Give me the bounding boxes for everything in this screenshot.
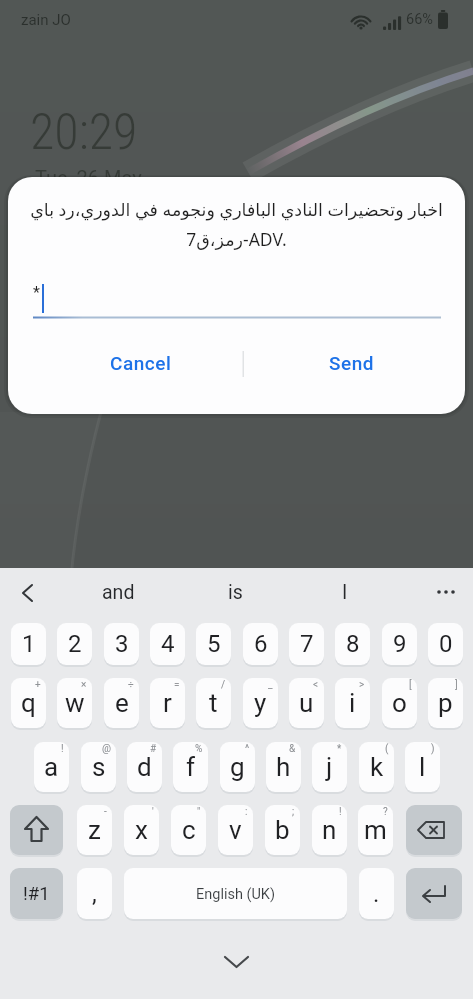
button[interactable] (124, 868, 347, 919)
staticText: ] (455, 679, 458, 691)
staticText: x (135, 815, 148, 845)
button[interactable]: u (289, 678, 324, 728)
staticText: English (UK) (196, 886, 276, 903)
staticText: " (197, 806, 201, 818)
button[interactable]: g (220, 742, 255, 792)
button[interactable]: e (104, 678, 139, 728)
button[interactable]: !#1 (10, 868, 63, 919)
staticText: . (373, 880, 380, 908)
button[interactable] (414, 568, 473, 616)
staticText: !#1 (23, 883, 50, 905)
staticText: and (102, 581, 135, 604)
staticText: d (137, 752, 152, 782)
button[interactable]: 8 (335, 623, 370, 665)
button[interactable]: c (171, 805, 206, 855)
staticText: 20:29 (30, 103, 138, 162)
staticText: - (104, 806, 107, 818)
staticText: ! (339, 806, 342, 818)
button[interactable]: n (312, 805, 347, 855)
staticText: + (35, 679, 41, 691)
staticText: zain JO (21, 11, 71, 29)
staticText: z (88, 815, 101, 845)
button[interactable]: 4 (150, 623, 185, 665)
button[interactable]: a (34, 742, 69, 792)
staticText: j (326, 752, 333, 782)
button[interactable]: Cancel (71, 338, 211, 388)
button[interactable]: d (127, 742, 162, 792)
staticText: ! (61, 743, 64, 755)
staticText: m (364, 815, 387, 845)
button[interactable] (60, 568, 178, 616)
staticText: 66% (406, 11, 433, 28)
button[interactable]: 7 (289, 623, 324, 665)
staticText: / (221, 679, 226, 691)
staticText: s (92, 752, 106, 782)
button[interactable]: 6 (243, 623, 278, 665)
staticText: Cancel (110, 352, 172, 374)
staticText: k (370, 752, 384, 782)
staticText: 6 (254, 630, 268, 658)
staticText: > (359, 679, 365, 691)
button[interactable] (296, 568, 414, 616)
button[interactable]: l (405, 742, 440, 792)
staticText: = (174, 679, 180, 691)
staticText: @ (102, 743, 111, 755)
staticText: f (186, 752, 196, 782)
button[interactable]: w (57, 678, 92, 728)
button[interactable] (178, 568, 296, 616)
staticText: × (81, 679, 87, 691)
button[interactable] (200, 943, 273, 983)
staticText: 3 (115, 630, 129, 658)
button[interactable] (406, 868, 462, 919)
button[interactable]: b (265, 805, 300, 855)
staticText: t (209, 688, 218, 718)
staticText: r (163, 688, 172, 718)
button[interactable]: r (150, 678, 185, 728)
button[interactable]: i (335, 678, 370, 728)
button[interactable]: 5 (196, 623, 231, 665)
button[interactable]: q (11, 678, 46, 728)
button[interactable] (406, 805, 462, 855)
button[interactable]: v (218, 805, 253, 855)
button[interactable]: k (359, 742, 394, 792)
button[interactable]: f (173, 742, 208, 792)
button[interactable]: 2 (57, 623, 92, 665)
staticText: 5 (207, 630, 221, 658)
staticText: b (275, 815, 290, 845)
button[interactable]: 1 (11, 623, 46, 665)
button[interactable]: j (312, 742, 347, 792)
staticText: u (299, 688, 314, 718)
button[interactable]: z (77, 805, 112, 855)
staticText: 2 (68, 630, 82, 658)
button[interactable]: x (124, 805, 159, 855)
button[interactable]: Send (281, 338, 421, 388)
staticText: 1 (22, 630, 36, 658)
button[interactable]: t (196, 678, 231, 728)
staticText: _ (268, 679, 273, 691)
button[interactable]: s (81, 742, 116, 792)
staticText: I (342, 581, 348, 604)
staticText: % (195, 743, 203, 755)
staticText: ? (383, 806, 388, 818)
staticText: 8 (346, 630, 360, 658)
button[interactable]: m (358, 805, 393, 855)
button[interactable] (10, 805, 63, 855)
button[interactable]: 3 (104, 623, 139, 665)
button[interactable]: 9 (382, 623, 417, 665)
staticText: < (313, 679, 319, 691)
staticText: l (419, 752, 426, 782)
button[interactable]: o (382, 678, 417, 728)
button[interactable] (0, 568, 60, 616)
staticText: q (21, 688, 36, 718)
button[interactable]: h (266, 742, 301, 792)
staticText: c (182, 815, 196, 845)
staticText: p (438, 688, 453, 718)
button[interactable]: p (428, 678, 463, 728)
staticText: & (289, 743, 296, 755)
button[interactable]: y (243, 678, 278, 728)
button[interactable]: . (359, 868, 394, 919)
staticText: 0 (439, 630, 453, 658)
button[interactable]: , (77, 868, 112, 919)
staticText: Send (329, 352, 374, 374)
button[interactable]: 0 (428, 623, 463, 665)
